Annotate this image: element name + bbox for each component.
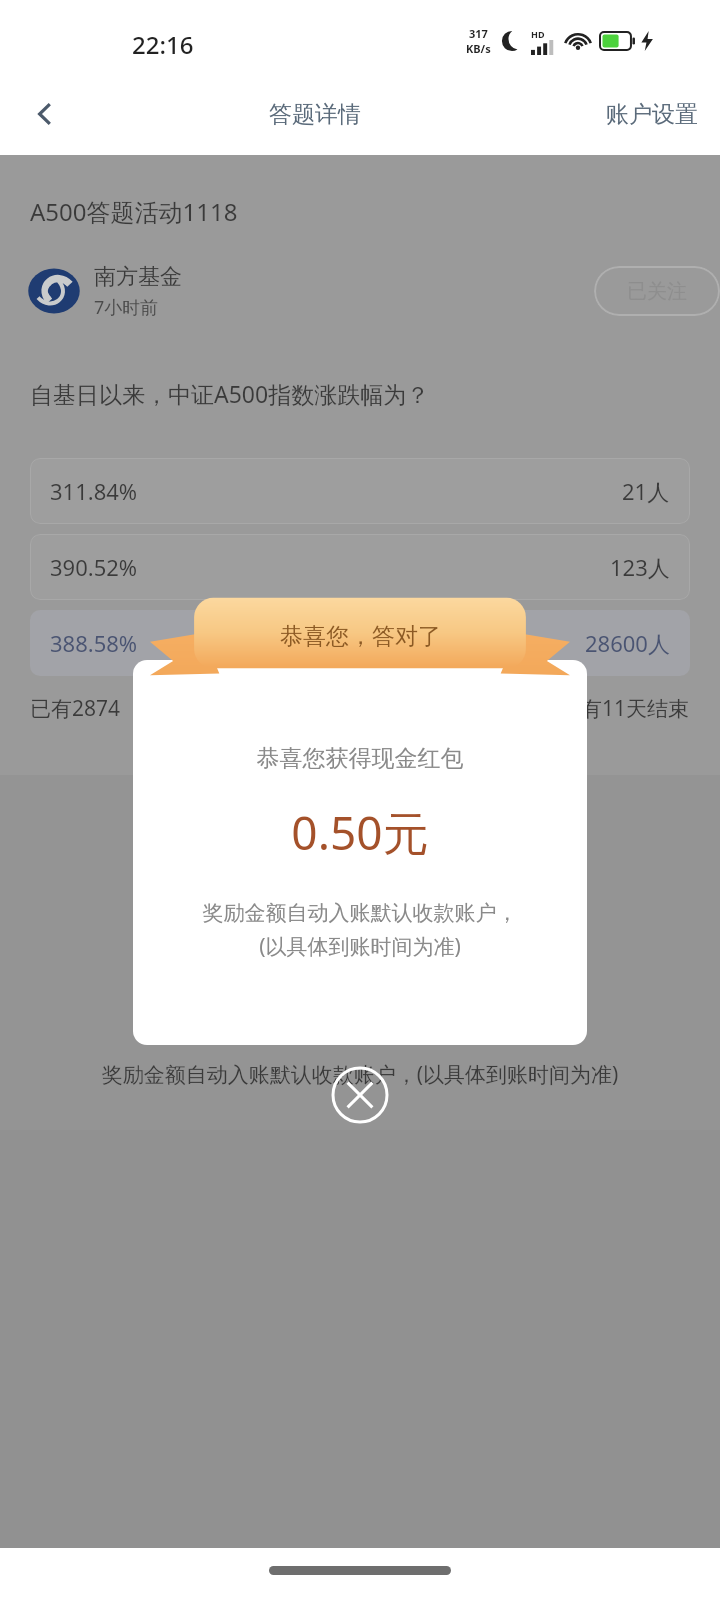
staticText: 123人 <box>610 552 670 582</box>
staticText: 奖励金额自动入账默认收款账户，(以具体到账时间为准) <box>0 1060 720 1089</box>
staticText: HD <box>531 28 545 40</box>
staticText: 0.50元 <box>133 801 587 864</box>
staticText: 恭喜您获得现金红包 <box>133 744 587 773</box>
button[interactable]: Close <box>329 1064 391 1126</box>
staticText: 答题详情 <box>269 100 361 129</box>
staticText: 已关注 <box>627 279 687 304</box>
button[interactable]: 390.52% <box>30 534 690 600</box>
button[interactable]: 账户设置 <box>540 78 720 150</box>
button[interactable]: 311.84% <box>30 458 690 524</box>
staticText: KB/s <box>466 41 491 56</box>
staticText: 南方基金 <box>94 263 182 291</box>
staticText: 有11天结束 <box>581 694 690 723</box>
staticText: 恭喜您，答对了 <box>280 622 441 651</box>
staticText: 已有2874 <box>30 694 121 723</box>
staticText: 311.84% <box>50 476 138 506</box>
button[interactable]: Back <box>0 78 90 150</box>
staticText: 自基日以来，中证A500指数涨跌幅为？ <box>30 378 430 409</box>
staticText: 账户设置 <box>606 100 698 129</box>
staticText: 390.52% <box>50 552 138 582</box>
staticText: 388.58% <box>50 628 138 658</box>
staticText: 奖励金额自动入账默认收款账户， <box>133 900 587 926</box>
button[interactable]: 388.58% <box>30 610 690 676</box>
staticText: A500答题活动1118 <box>30 195 238 228</box>
button[interactable]: 已关注 <box>594 266 720 316</box>
staticText: 7小时前 <box>94 295 159 320</box>
staticText: (以具体到账时间为准) <box>133 932 587 961</box>
staticText: 21人 <box>622 476 670 506</box>
staticText: 28600人 <box>585 628 670 658</box>
staticText: 22:16 <box>132 28 194 61</box>
staticText: 317 <box>469 26 488 41</box>
